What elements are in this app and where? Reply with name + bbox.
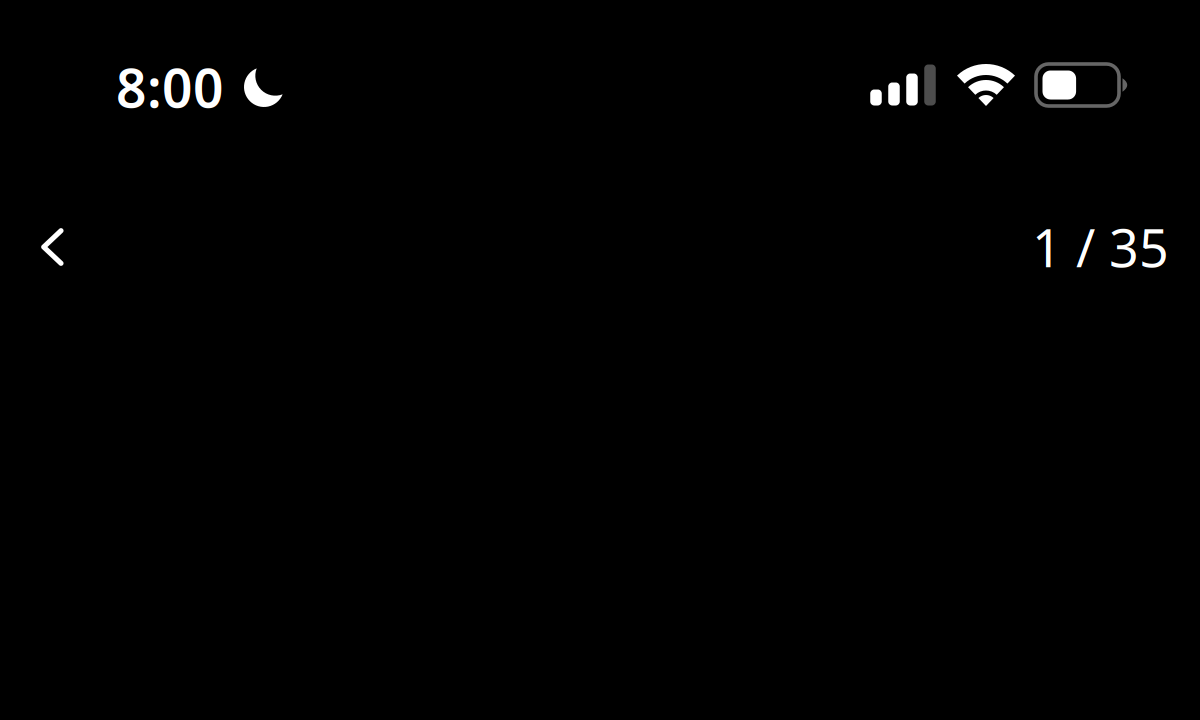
button[interactable]: Back [0,206,94,288]
staticText: 8:00 [116,52,224,122]
staticText: 1 / 35 [1032,212,1169,282]
button[interactable]: 1 / 35 [1008,192,1200,302]
